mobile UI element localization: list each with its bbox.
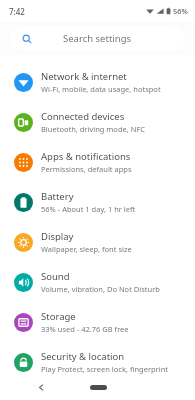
staticText: Connected devices (41, 110, 125, 123)
staticText: Display (41, 230, 74, 243)
staticText: Wallpaper, sleep, font size (41, 244, 132, 254)
button[interactable]: Sound (0, 262, 195, 302)
button[interactable]: Battery (0, 182, 195, 222)
staticText: Apps & notifications (41, 150, 131, 163)
staticText: Play Protect, screen lock, fingerprint (41, 364, 168, 374)
staticText: Volume, vibration, Do Not Disturb (41, 284, 160, 294)
staticText: 7:42 (9, 6, 25, 17)
staticText: Permissions, default apps (41, 164, 132, 174)
button[interactable]: Back (33, 379, 49, 395)
staticText: Network & internet (41, 70, 127, 83)
staticText: Security & location (41, 350, 125, 363)
staticText: Accounts (41, 382, 82, 395)
button[interactable]: Search settings (10, 26, 185, 51)
staticText: Battery (41, 190, 74, 203)
button[interactable]: Security & location (0, 342, 195, 382)
button[interactable]: Storage (0, 302, 195, 342)
staticText: Search settings (63, 32, 132, 45)
staticText: 33% used - 42.76 GB free (41, 324, 129, 334)
button[interactable]: Connected devices (0, 102, 195, 142)
staticText: Wi-Fi, mobile, data usage, hotspot (41, 84, 161, 94)
staticText: Storage (41, 310, 76, 323)
button[interactable]: Accounts (0, 382, 195, 400)
staticText: 56% (173, 6, 188, 16)
button[interactable]: Network & internet (0, 62, 195, 102)
button[interactable]: Home (83, 380, 113, 394)
staticText: Sound (41, 270, 70, 283)
staticText: 56% - About 1 day, 1 hr left (41, 204, 136, 214)
button[interactable]: Apps & notifications (0, 142, 195, 182)
button[interactable]: Display (0, 222, 195, 262)
staticText: Bluetooth, driving mode, NFC (41, 124, 146, 134)
